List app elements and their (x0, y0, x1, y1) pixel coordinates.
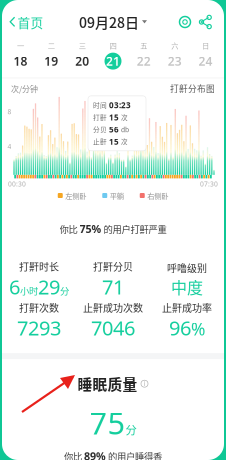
staticText: 7293 (17, 314, 61, 341)
staticText: 五 (140, 40, 147, 51)
staticText: 一 (17, 40, 24, 51)
staticText: 的用户睡得香 (108, 449, 162, 460)
staticText: db (121, 125, 129, 134)
button[interactable]: 二 (36, 39, 67, 71)
button[interactable]: 三 (67, 39, 98, 71)
staticText: 次 (121, 137, 128, 146)
button[interactable]: 设置 (175, 11, 195, 33)
staticText: 23 (168, 53, 182, 69)
staticText: 7046 (91, 314, 135, 341)
staticText: 4 (7, 142, 11, 151)
staticText: 18 (13, 53, 27, 69)
button[interactable]: 首页 (2, 11, 49, 33)
staticText: 你比 (59, 222, 77, 236)
staticText: 22 (137, 53, 151, 69)
staticText: 89% (84, 449, 106, 460)
staticText: 打鼾 (93, 112, 107, 122)
staticText: 止鼾成功率 (162, 300, 212, 314)
staticText: 首页 (17, 13, 43, 31)
staticText: 15 (109, 112, 119, 123)
staticText: 分贝 (93, 125, 107, 134)
staticText: 次 (121, 112, 128, 122)
staticText: 07:30 (200, 179, 218, 188)
staticText: 睡眠质量 (77, 373, 137, 394)
staticText: 6 (9, 273, 20, 300)
staticText: 时间 (93, 100, 107, 110)
staticText: 20 (75, 53, 89, 69)
button[interactable]: 日 (190, 39, 221, 71)
staticText: 71 (102, 273, 124, 300)
staticText: 19 (44, 53, 58, 69)
staticText: 日 (202, 40, 209, 51)
staticText: 03:23 (109, 100, 131, 110)
button[interactable]: 五 (128, 39, 159, 71)
staticText: 三 (79, 40, 86, 51)
button[interactable]: 六 (159, 39, 190, 71)
staticText: 8 (7, 107, 11, 116)
staticText: 00:30 (8, 179, 26, 188)
button[interactable]: 09月28日 (79, 11, 147, 33)
staticText: 二 (48, 40, 55, 51)
staticText: 的用户打鼾严重 (103, 222, 166, 236)
staticText: 56 (109, 124, 119, 135)
staticText: 96 (169, 314, 191, 341)
staticText: 打鼾分布图 (170, 82, 215, 95)
staticText: 平躺 (110, 190, 124, 201)
staticText: 09月28日 (79, 12, 139, 32)
staticText: 六 (171, 40, 178, 51)
staticText: 打鼾分贝 (93, 259, 133, 273)
staticText: 打鼾次数 (19, 300, 59, 314)
staticText: 分 (125, 421, 136, 438)
staticText: 15 (109, 136, 119, 147)
staticText: % (191, 317, 205, 340)
staticText: 打鼾时长 (19, 259, 59, 273)
staticText: 小时 (20, 284, 38, 297)
staticText: 右侧卧 (147, 190, 168, 201)
staticText: 24 (199, 53, 213, 69)
staticText: 21 (106, 53, 120, 69)
staticText: 29 (38, 273, 60, 300)
staticText: 左侧卧 (65, 190, 86, 201)
staticText: 四 (109, 40, 116, 51)
staticText: 中度 (171, 275, 203, 298)
button[interactable]: 一 (5, 39, 36, 71)
staticText: 次/分钟 (11, 83, 38, 94)
staticText: i (143, 379, 145, 388)
staticText: 你比 (64, 449, 82, 460)
button[interactable]: 分享 (195, 11, 215, 33)
staticText: 75 (89, 402, 125, 443)
staticText: 止鼾成功次数 (83, 300, 143, 314)
staticText: 分 (60, 284, 69, 297)
staticText: 75% (79, 222, 101, 236)
staticText: 呼噜级别 (167, 261, 207, 275)
button[interactable]: 四 (98, 39, 128, 71)
staticText: 止鼾 (93, 137, 107, 146)
